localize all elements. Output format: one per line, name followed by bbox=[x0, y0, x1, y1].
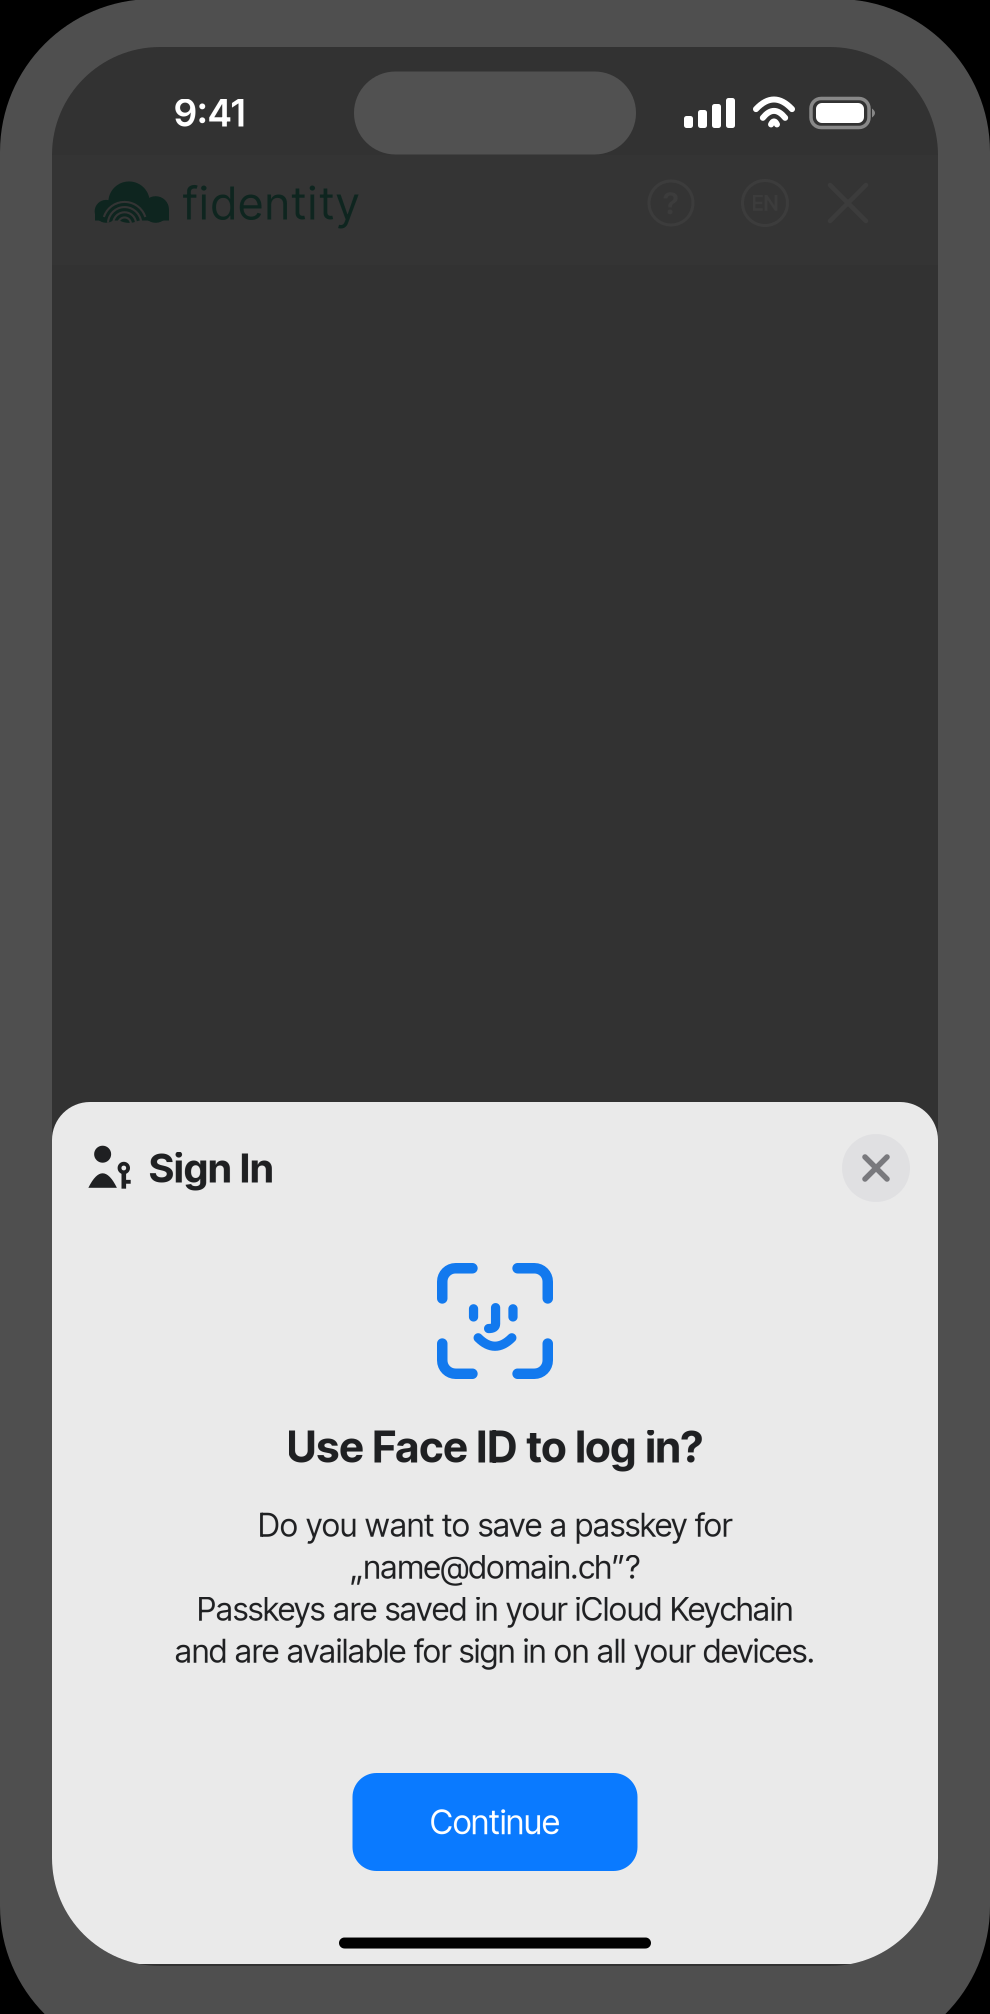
staticText: fidentity bbox=[183, 176, 359, 230]
staticText: EN bbox=[751, 190, 778, 216]
staticText: Continue bbox=[430, 1802, 560, 1842]
staticText: Use Face ID to log in? bbox=[286, 1421, 703, 1473]
button[interactable]: Continue bbox=[352, 1773, 637, 1871]
staticText: Do you want to save a passkey for bbox=[258, 1506, 732, 1544]
staticText: Passkeys are saved in your iCloud Keycha… bbox=[197, 1590, 793, 1628]
staticText: and are available for sign in on all you… bbox=[175, 1632, 815, 1670]
staticText: „name@domain.ch”? bbox=[349, 1548, 640, 1586]
staticText: Sign In bbox=[149, 1144, 274, 1192]
button[interactable]: Close bbox=[834, 1126, 918, 1210]
staticText: 9:41 bbox=[174, 90, 245, 136]
